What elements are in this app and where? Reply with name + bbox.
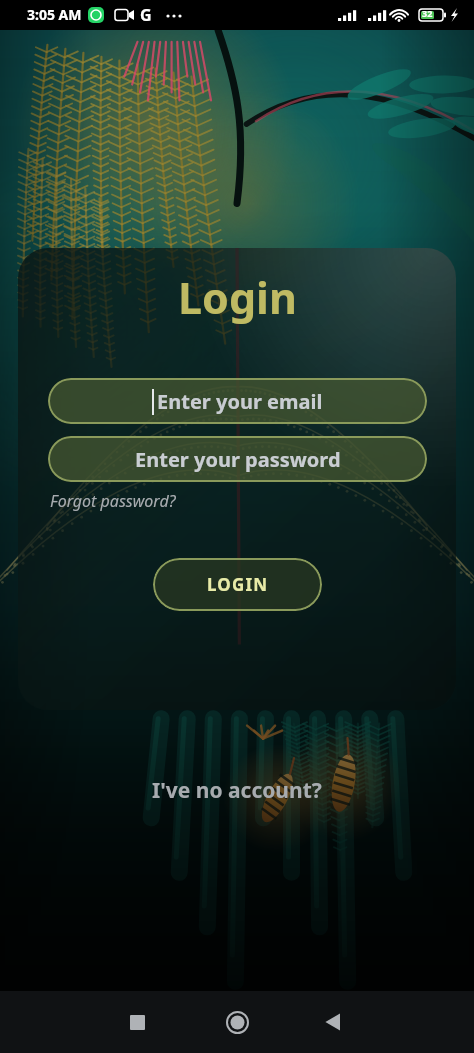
button[interactable]: Recent apps [118,1003,156,1041]
staticText: Enter your password [135,446,341,473]
staticText: LOGIN [207,573,269,596]
staticText: 32 [422,7,433,19]
button[interactable]: I've no account? [144,772,330,809]
button[interactable]: Forgot password? [48,488,178,514]
staticText: G [140,4,152,26]
staticText: Forgot password? [50,490,176,512]
staticText: Login [178,268,297,327]
button[interactable]: Back [314,1003,352,1041]
staticText: Enter your email [157,388,323,415]
button[interactable]: Enter your email [48,378,427,424]
staticText: 3:05 AM [27,5,82,24]
button[interactable]: Enter your password [48,436,427,482]
button[interactable]: LOGIN [153,558,322,611]
staticText: I've no account? [152,776,322,805]
button[interactable]: Home [218,1003,256,1041]
